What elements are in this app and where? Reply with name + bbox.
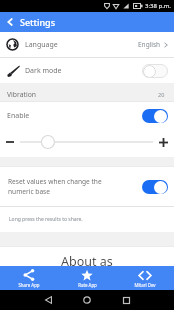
button[interactable]: Navigate up (0, 12, 20, 32)
button[interactable]: Dark mode (0, 58, 174, 83)
button[interactable]: Recent apps (116, 290, 136, 310)
button[interactable]: Switch on (142, 109, 168, 123)
staticText: Enable (7, 111, 30, 121)
staticText: Dark mode (25, 66, 62, 76)
button[interactable]: Enable (0, 102, 174, 127)
staticText: Language (25, 40, 58, 50)
button[interactable]: Switch on (142, 180, 168, 194)
staticText: Vibration (7, 90, 37, 99)
button[interactable]: Mitari Dev (116, 266, 174, 290)
staticText: Rate App (78, 282, 97, 288)
button[interactable]: Back (38, 290, 58, 310)
button[interactable]: Reset values when change the numeric bas… (0, 167, 174, 206)
button[interactable]: Home (77, 290, 97, 310)
staticText: English (138, 40, 161, 49)
button[interactable]: Decrease (4, 136, 16, 148)
staticText: Reset values when change the numeric bas… (8, 177, 102, 196)
staticText: Settings (20, 16, 56, 28)
staticText: Share App (18, 282, 40, 288)
staticText: Long press the results to share. (9, 216, 83, 223)
button[interactable]: Share App (0, 266, 58, 290)
staticText: Mitari Dev (134, 282, 156, 288)
button[interactable]: Switch off (142, 64, 168, 78)
button[interactable]: Increase (157, 136, 169, 148)
staticText: 20 (158, 91, 165, 98)
button[interactable]: Rate App (58, 266, 116, 290)
staticText: 3:38 p.m. (145, 2, 171, 10)
button[interactable]: Language (0, 32, 174, 57)
staticText: About as (61, 253, 113, 270)
